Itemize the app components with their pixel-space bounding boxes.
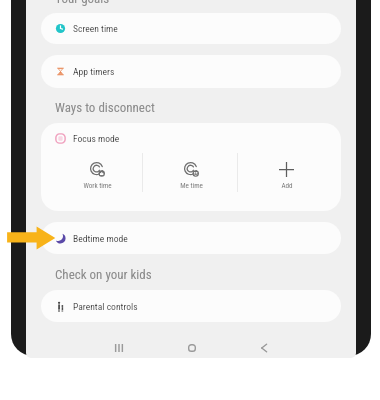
staticText: Parental controls <box>73 301 138 312</box>
button[interactable]: Bedtime mode <box>41 222 341 254</box>
button[interactable]: Me time <box>158 156 224 194</box>
staticText: App timers <box>73 66 115 77</box>
button[interactable]: Add <box>253 156 319 194</box>
button[interactable]: Work time <box>64 156 130 194</box>
staticText: Screen time <box>73 23 118 34</box>
staticText: Check on your kids <box>55 267 152 282</box>
staticText: Me time <box>180 181 203 189</box>
button[interactable]: Recents <box>106 335 132 358</box>
button[interactable]: Focus mode <box>41 123 341 153</box>
button[interactable]: App timers <box>41 55 341 88</box>
staticText: Ways to disconnect <box>55 100 155 115</box>
staticText: Bedtime mode <box>73 233 128 244</box>
staticText: Your goals <box>55 0 110 6</box>
staticText: Focus mode <box>73 133 120 144</box>
button[interactable]: Parental controls <box>41 290 341 322</box>
button[interactable]: Screen time <box>41 13 341 44</box>
staticText: Add <box>281 181 293 189</box>
staticText: Work time <box>83 181 112 189</box>
button[interactable]: Home <box>179 335 205 358</box>
button[interactable]: Back <box>251 335 277 358</box>
